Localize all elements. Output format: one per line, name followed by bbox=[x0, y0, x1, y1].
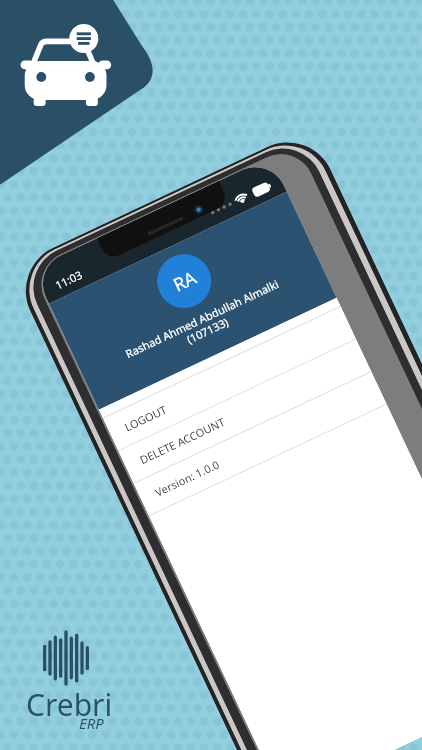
button[interactable]: LOGOUT bbox=[103, 306, 356, 450]
staticText: ERP bbox=[79, 713, 104, 733]
button[interactable]: Version: 1.0.0 bbox=[133, 371, 387, 516]
button[interactable]: DELETE ACCOUNT bbox=[118, 338, 371, 483]
staticText: DELETE ACCOUNT bbox=[137, 414, 228, 467]
staticText: Crebri bbox=[26, 684, 113, 725]
staticText: Rashad Ahmed Abdullah Almalki (107133) bbox=[123, 276, 286, 373]
staticText: LOGOUT bbox=[122, 402, 169, 434]
staticText: RA bbox=[169, 265, 201, 297]
staticText: Version: 1.0.0 bbox=[152, 456, 222, 500]
staticText: 11:03 bbox=[53, 266, 85, 292]
